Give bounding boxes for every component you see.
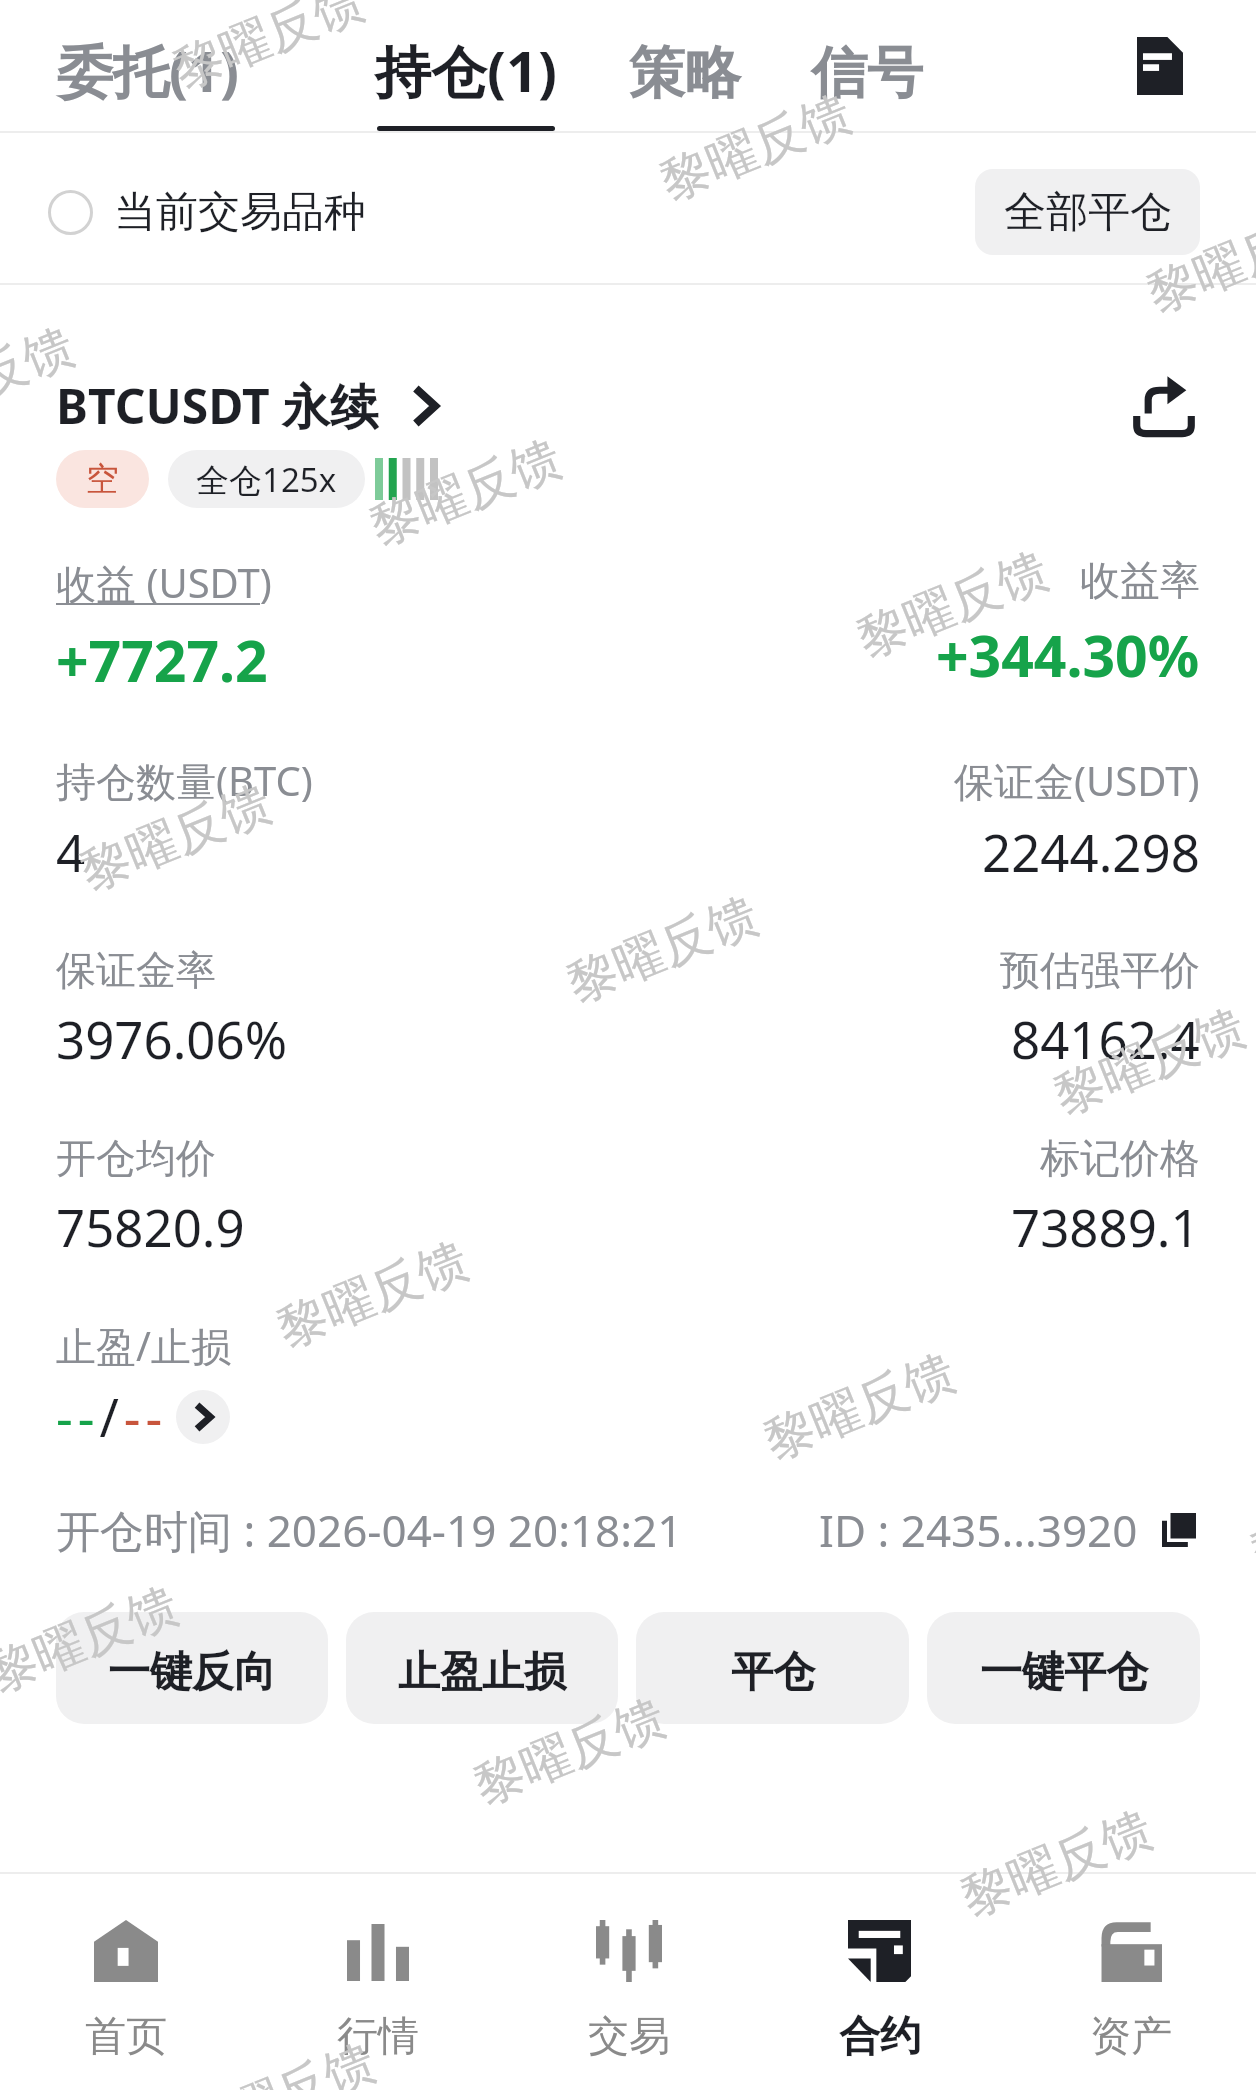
staticText: 止盈/止损 bbox=[56, 1318, 231, 1373]
staticText: +344.30% bbox=[936, 616, 1200, 694]
staticText: 持仓(1) bbox=[375, 32, 557, 108]
staticText: 信号 bbox=[811, 38, 923, 109]
button[interactable]: 持仓(1) bbox=[358, 0, 574, 131]
staticText: 75820.9 bbox=[56, 1192, 245, 1261]
staticText: 全部平仓 bbox=[1004, 186, 1172, 239]
staticText: 开仓时间 : 2026-04-19 20:18:21 bbox=[56, 1500, 683, 1560]
button[interactable]: 交易 bbox=[503, 1874, 754, 2090]
button[interactable]: 一键反向 bbox=[56, 1612, 328, 1724]
button[interactable]: 止盈止损 bbox=[346, 1612, 618, 1724]
staticText: 平仓 bbox=[731, 1646, 815, 1699]
staticText: 黎曜反馈 bbox=[465, 1685, 674, 1819]
button[interactable]: 一键平仓 bbox=[927, 1612, 1200, 1724]
staticText: 黎曜反馈 bbox=[175, 2030, 384, 2090]
staticText: 当前交易品种 bbox=[114, 186, 366, 239]
staticText: 2244.298 bbox=[982, 817, 1200, 886]
staticText: 合约 bbox=[839, 2011, 921, 2063]
button[interactable]: 策略 bbox=[612, 0, 758, 131]
staticText: 黎曜反馈 bbox=[558, 883, 767, 1017]
staticText: 一键平仓 bbox=[980, 1646, 1148, 1699]
staticText: 全仓125x bbox=[196, 457, 337, 502]
staticText: 黎曜反馈 bbox=[755, 1340, 964, 1474]
staticText: 黎曜反馈 bbox=[361, 426, 570, 560]
staticText: 策略 bbox=[629, 38, 741, 109]
button[interactable]: 资产 bbox=[1005, 1874, 1256, 2090]
button[interactable]: 当前交易品种 bbox=[48, 186, 366, 239]
staticText: 空 bbox=[86, 458, 119, 500]
staticText: 73889.1 bbox=[1011, 1192, 1200, 1261]
button[interactable]: 信号 bbox=[794, 0, 940, 131]
staticText: 首页 bbox=[85, 2011, 167, 2063]
staticText: 3976.06% bbox=[56, 1004, 288, 1073]
button[interactable]: 全部平仓 bbox=[975, 169, 1200, 255]
staticText: 持仓数量(BTC) bbox=[56, 753, 313, 808]
staticText: 黎曜反馈 bbox=[1045, 995, 1254, 1129]
staticText: 黎曜反馈 bbox=[1138, 193, 1256, 327]
staticText: 保证金(USDT) bbox=[954, 753, 1200, 808]
staticText: --/-- bbox=[56, 1381, 168, 1452]
staticText: 委托(1) bbox=[57, 32, 239, 108]
button[interactable]: 首页 bbox=[0, 1874, 252, 2090]
button[interactable]: --/-- bbox=[56, 1381, 230, 1452]
button[interactable]: 委托(1) bbox=[40, 0, 256, 131]
staticText: 黎曜反馈 bbox=[848, 538, 1057, 672]
staticText: 一键反向 bbox=[108, 1646, 276, 1699]
staticText: +7727.2 bbox=[56, 621, 268, 699]
button[interactable]: 平仓 bbox=[636, 1612, 909, 1724]
staticText: 止盈止损 bbox=[398, 1646, 566, 1699]
staticText: 交易 bbox=[588, 2011, 670, 2063]
staticText: 预估强平价 bbox=[1000, 945, 1200, 995]
button[interactable]: ID : 2435...3920 bbox=[819, 1500, 1196, 1560]
button[interactable]: BTCUSDT 永续 bbox=[56, 373, 437, 439]
button[interactable]: Order history bbox=[1115, 16, 1205, 116]
staticText: 4 bbox=[56, 817, 86, 886]
staticText: 黎曜反馈 bbox=[0, 1573, 187, 1707]
button[interactable]: 合约 bbox=[754, 1874, 1005, 2090]
staticText: 黎曜反馈 bbox=[0, 314, 83, 448]
staticText: 收益 (USDT) bbox=[56, 555, 272, 610]
staticText: 黎曜反馈 bbox=[952, 1797, 1161, 1931]
staticText: 保证金率 bbox=[56, 945, 216, 995]
staticText: 收益率 bbox=[1080, 555, 1200, 605]
button[interactable]: 行情 bbox=[252, 1874, 503, 2090]
staticText: 黎曜反馈 bbox=[651, 81, 860, 215]
staticText: ID : 2435...3920 bbox=[819, 1500, 1138, 1560]
staticText: 资产 bbox=[1090, 2011, 1172, 2063]
staticText: 84162.4 bbox=[1011, 1004, 1200, 1073]
staticText: BTCUSDT 永续 bbox=[56, 373, 379, 439]
staticText: 行情 bbox=[337, 2011, 419, 2063]
staticText: 标记价格 bbox=[1040, 1133, 1200, 1183]
staticText: 黎曜反馈 bbox=[1242, 1452, 1256, 1586]
button[interactable]: Share bbox=[1126, 368, 1202, 444]
staticText: 黎曜反馈 bbox=[164, 0, 373, 103]
staticText: 黎曜反馈 bbox=[71, 771, 280, 905]
staticText: 开仓均价 bbox=[56, 1133, 216, 1183]
staticText: 黎曜反馈 bbox=[268, 1228, 477, 1362]
